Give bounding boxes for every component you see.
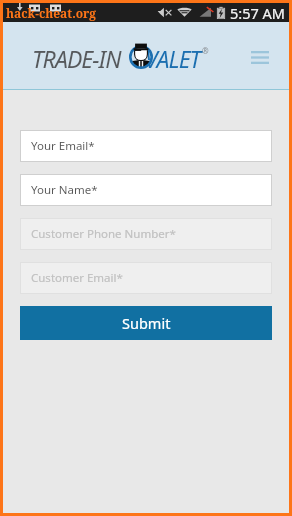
button[interactable]: Your Email* [20, 130, 272, 162]
staticText: Customer Email* [31, 270, 123, 286]
staticText: Your Email* [31, 138, 95, 154]
staticText: VALET [145, 43, 201, 74]
button[interactable]: Menu [244, 41, 276, 73]
button[interactable]: Customer Phone Number* [20, 218, 272, 250]
staticText: Customer Phone Number* [31, 226, 176, 242]
staticText: TRADE-IN [32, 43, 121, 74]
staticText: Submit [122, 313, 171, 333]
staticText: ® [202, 45, 209, 56]
staticText: hack-cheat.org [6, 5, 97, 21]
button[interactable]: Submit [20, 306, 272, 340]
button[interactable]: Customer Email* [20, 262, 272, 294]
staticText: Your Name* [31, 182, 98, 198]
button[interactable]: Your Name* [20, 174, 272, 206]
staticText: 5:57 AM [230, 3, 285, 22]
